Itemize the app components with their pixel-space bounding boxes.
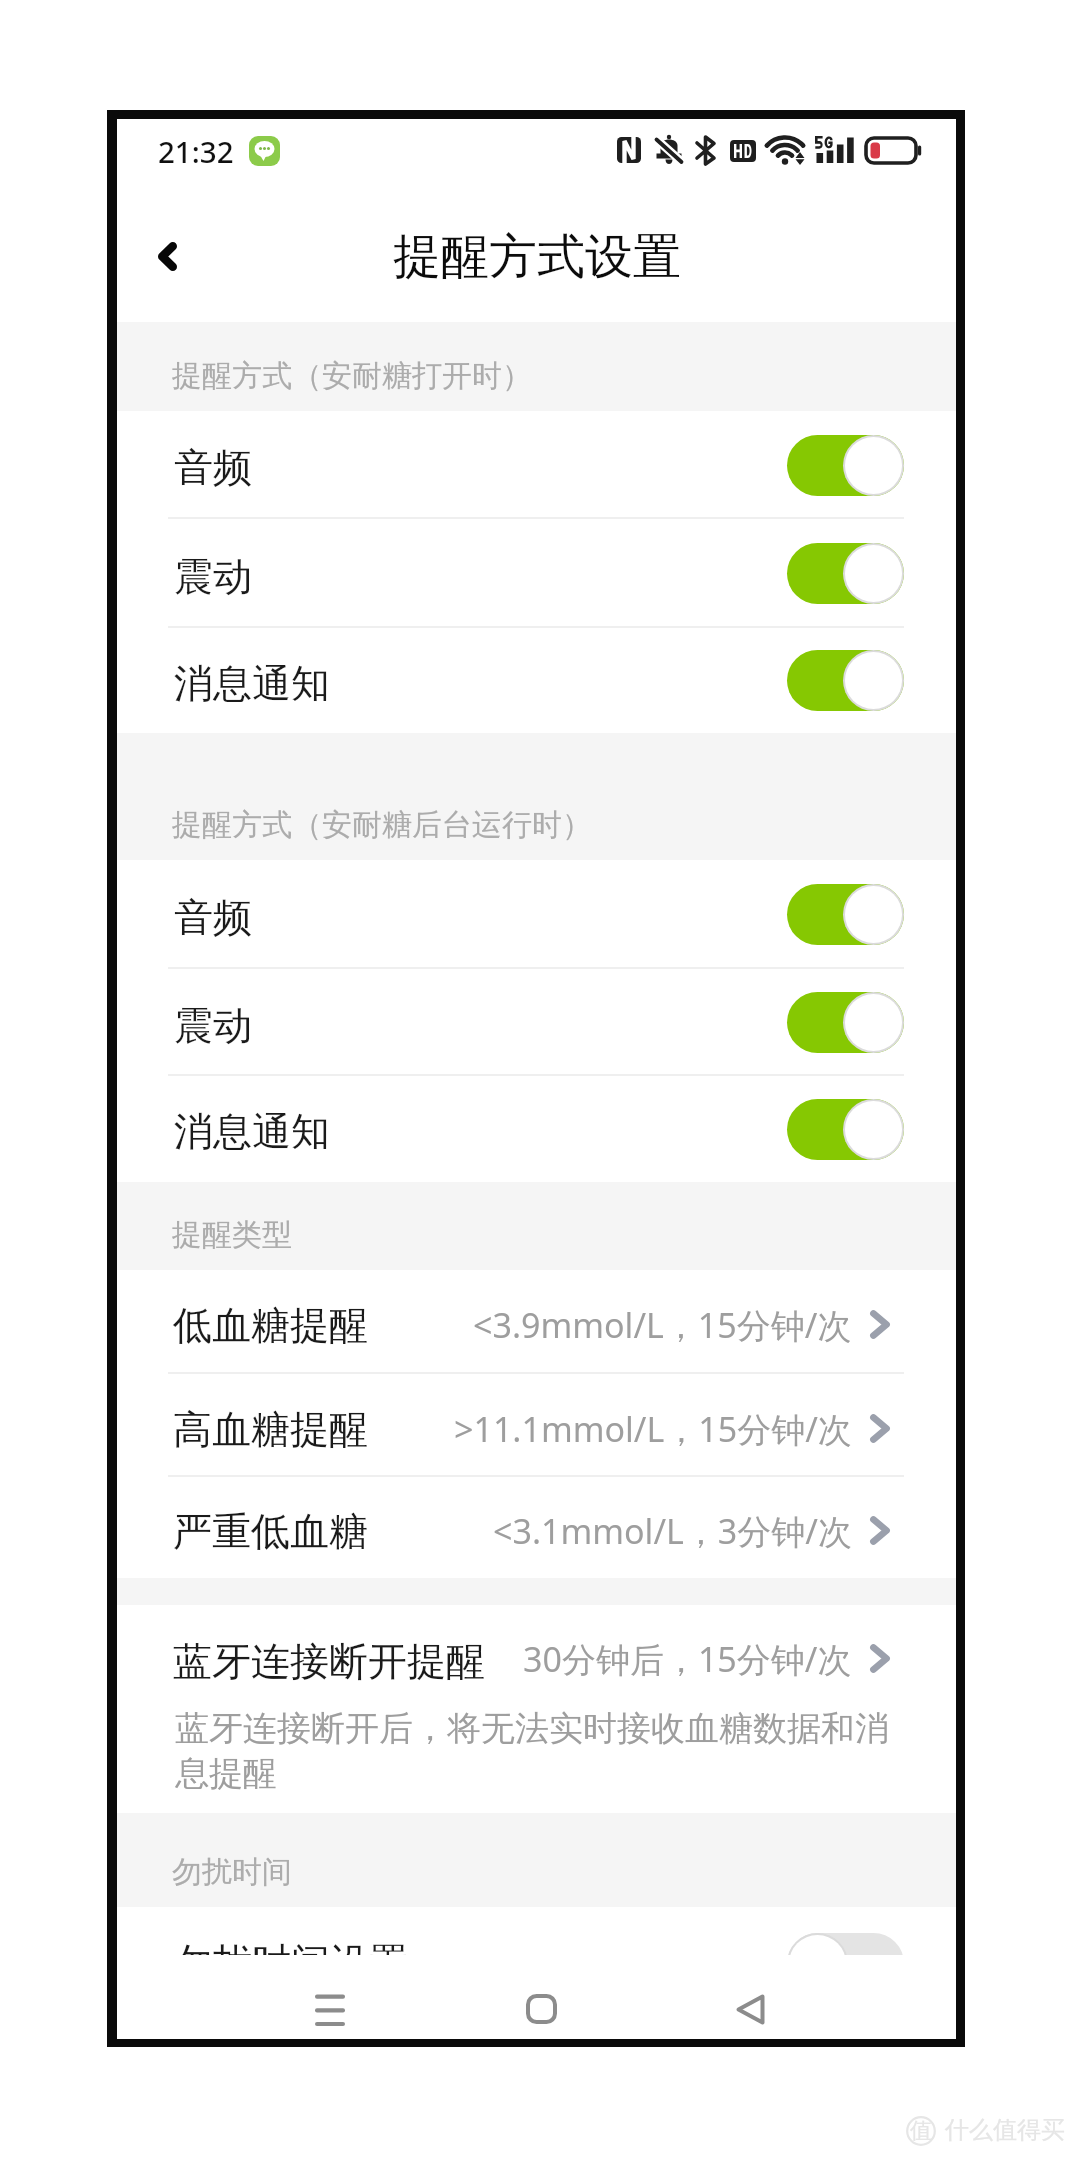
staticText: 勿扰时间设置 — [174, 1938, 408, 1987]
button[interactable]: 蓝牙连接断开提醒 — [117, 1605, 956, 1813]
staticText: <3.1mmol/L，3分钟/次 — [493, 1508, 852, 1554]
button[interactable]: 音频 — [117, 860, 956, 969]
staticText: >11.1mmol/L，15分钟/次 — [454, 1406, 852, 1452]
button[interactable]: 音频 — [117, 411, 956, 519]
staticText: 震动 — [174, 1001, 252, 1050]
staticText: 高血糖提醒 — [173, 1405, 368, 1454]
button[interactable]: Back — [708, 1967, 792, 2051]
staticText: 严重低血糖 — [173, 1507, 368, 1556]
button[interactable]: 严重低血糖 — [117, 1477, 956, 1578]
staticText: 21:32 — [158, 131, 234, 171]
button[interactable]: 勿扰时间设置 — [117, 1907, 956, 2039]
staticText: 消息通知 — [174, 659, 330, 708]
staticText: 30分钟后，15分钟/次 — [523, 1636, 852, 1682]
button[interactable]: Recent apps — [288, 1967, 372, 2051]
staticText: 提醒方式（安耐糖后台运行时） — [172, 806, 592, 844]
staticText: 提醒类型 — [172, 1216, 292, 1254]
staticText: 蓝牙连接断开提醒 — [173, 1637, 485, 1686]
button[interactable]: Back — [120, 206, 214, 306]
staticText: 蓝牙连接断开后，将无法实时接收血糖数据和消息提醒 — [175, 1707, 897, 1795]
staticText: <3.9mmol/L，15分钟/次 — [473, 1302, 852, 1348]
staticText: 提醒方式（安耐糖打开时） — [172, 357, 532, 395]
staticText: 消息通知 — [174, 1107, 330, 1156]
button[interactable]: 高血糖提醒 — [117, 1374, 956, 1477]
button[interactable]: 震动 — [117, 519, 956, 628]
staticText: 音频 — [174, 893, 252, 942]
button[interactable]: Home — [499, 1967, 583, 2051]
staticText: 低血糖提醒 — [173, 1301, 368, 1350]
staticText: 值 — [910, 2117, 932, 2145]
staticText: 勿扰时间 — [172, 1853, 292, 1891]
staticText: 震动 — [174, 552, 252, 601]
staticText: 什么值得买 — [945, 2115, 1065, 2145]
staticText: 音频 — [174, 443, 252, 492]
staticText: 提醒方式设置 — [393, 227, 681, 287]
button[interactable]: 震动 — [117, 969, 956, 1076]
button[interactable]: 消息通知 — [117, 1076, 956, 1182]
button[interactable]: 消息通知 — [117, 628, 956, 733]
button[interactable]: 低血糖提醒 — [117, 1270, 956, 1374]
